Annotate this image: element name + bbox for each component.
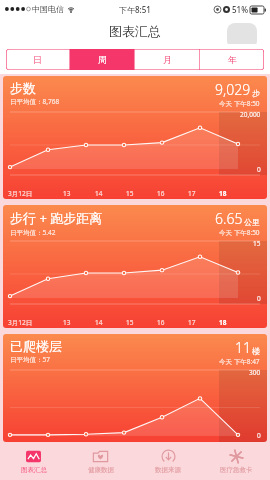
staticText: 图表汇总 <box>109 23 161 39</box>
staticText: 3月12日 <box>8 318 33 327</box>
staticText: 楼 <box>252 346 260 356</box>
button[interactable]: 图表汇总 <box>0 442 67 480</box>
button[interactable]: 健康数据 <box>67 442 134 480</box>
staticText: 0 <box>257 294 261 303</box>
staticText: 17 <box>188 318 196 327</box>
staticText: 今天 下午8:50 <box>219 99 260 108</box>
button[interactable]: 步数 <box>3 76 267 199</box>
button[interactable]: 已爬楼层 <box>3 334 267 442</box>
button[interactable]: 数据来源 <box>134 442 202 480</box>
staticText: 数据来源 <box>155 466 181 474</box>
staticText: 日平均值：8,768 <box>10 97 60 106</box>
staticText: 3月12日 <box>8 189 33 198</box>
staticText: 下午8:51 <box>119 4 151 15</box>
staticText: 6.65 <box>215 209 243 228</box>
staticText: 医疗急救卡 <box>220 466 253 474</box>
staticText: 公里 <box>244 217 260 227</box>
staticText: 步数 <box>10 80 36 96</box>
button[interactable]: Assistive touch <box>227 23 257 49</box>
staticText: 13 <box>63 318 71 327</box>
staticText: 0 <box>257 431 261 440</box>
staticText: 今天 下午8:47 <box>219 357 260 366</box>
staticText: 步 <box>252 88 260 98</box>
staticText: 20,000 <box>240 110 261 119</box>
staticText: 14 <box>95 189 103 198</box>
button[interactable]: 年 <box>200 49 264 70</box>
staticText: 14 <box>95 318 103 327</box>
staticText: 中国电信 <box>32 4 64 14</box>
staticText: 月 <box>163 54 172 65</box>
staticText: 周 <box>98 54 107 65</box>
staticText: 51% <box>232 4 248 15</box>
staticText: 日平均值：5.42 <box>10 228 56 237</box>
staticText: 15 <box>126 189 134 198</box>
staticText: 已爬楼层 <box>10 338 62 354</box>
button[interactable]: 步行 + 跑步距离 <box>3 205 267 328</box>
button[interactable]: 周 <box>70 49 134 70</box>
staticText: 17 <box>188 189 196 198</box>
staticText: 图表汇总 <box>21 466 47 474</box>
staticText: 15 <box>126 318 134 327</box>
button[interactable]: 日 <box>6 49 69 70</box>
staticText: 16 <box>157 189 165 198</box>
staticText: 300 <box>249 368 261 377</box>
staticText: 15 <box>253 239 261 248</box>
staticText: 16 <box>157 318 165 327</box>
button[interactable]: 月 <box>135 49 199 70</box>
staticText: 日 <box>33 54 42 65</box>
staticText: 18 <box>219 189 227 198</box>
staticText: 健康数据 <box>88 466 114 474</box>
staticText: 日平均值：57 <box>10 355 50 364</box>
staticText: 步行 + 跑步距离 <box>10 209 103 227</box>
staticText: 18 <box>219 318 227 327</box>
button[interactable]: 医疗急救卡 <box>202 442 270 480</box>
staticText: 9,029 <box>215 80 251 99</box>
staticText: 0 <box>257 165 261 174</box>
staticText: 11 <box>235 338 251 357</box>
staticText: 13 <box>63 189 71 198</box>
staticText: 年 <box>228 54 237 65</box>
staticText: 今天 下午8:50 <box>219 228 260 237</box>
